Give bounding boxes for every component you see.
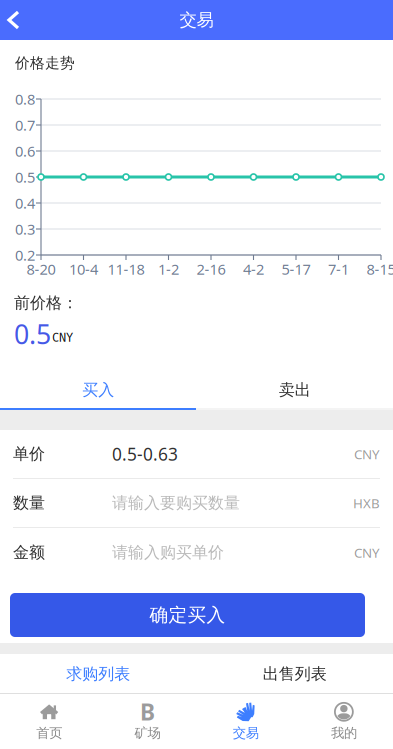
button[interactable]: 确定买入 [10,593,365,637]
staticText: 8-20 [26,259,55,279]
button[interactable]: 交易 [196,694,295,749]
staticText: 求购列表 [66,664,130,684]
staticText: 0.7 [15,115,35,135]
staticText: HXB [353,494,380,512]
staticText: B [140,696,155,727]
staticText: 0.5 [15,167,35,187]
staticText: 前价格： [14,293,78,313]
staticText: 单价 [13,444,45,464]
button[interactable]: 买入 [0,372,196,408]
button[interactable]: Back [0,0,28,39]
staticText: 0.4 [15,193,35,213]
staticText: 0.8 [15,89,35,109]
staticText: 0.6 [15,141,35,161]
button[interactable]: 出售列表 [196,654,393,694]
button[interactable]: 卖出 [196,372,393,408]
staticText: 0.5 [14,316,51,352]
staticText: 交易 [233,725,259,741]
staticText: 矿场 [134,725,160,741]
staticText: 10-4 [69,259,98,279]
staticText: 8-15 [366,259,393,279]
staticText: 0.3 [15,219,35,239]
button[interactable]: 首页 [0,694,98,749]
button[interactable]: 单价 [0,430,393,479]
staticText: 买入 [82,380,114,400]
staticText: CNY [354,445,380,463]
staticText: 首页 [36,725,62,741]
staticText: 7-1 [328,259,349,279]
staticText: 4-2 [243,259,264,279]
staticText: 请输入要购买数量 [112,493,240,513]
staticText: 5-17 [281,259,310,279]
staticText: 确定买入 [149,603,225,626]
staticText: 出售列表 [263,664,327,684]
staticText: 我的 [331,725,357,741]
staticText: 卖出 [279,380,311,400]
staticText: 2-16 [196,259,225,279]
staticText: 交易 [179,9,213,31]
button[interactable]: 求购列表 [0,654,196,694]
button[interactable]: 金额 [0,528,393,577]
staticText: 0.5-0.63 [112,442,178,465]
staticText: 价格走势 [15,54,75,72]
button[interactable]: B [98,694,196,749]
button[interactable]: 我的 [295,694,393,749]
staticText: 请输入购买单价 [112,543,224,562]
staticText: CNY [52,331,73,344]
staticText: 0.2 [15,245,35,265]
staticText: 11-18 [107,259,144,279]
staticText: 1-2 [158,259,179,279]
staticText: CNY [354,544,380,561]
staticText: 金额 [13,543,45,562]
button[interactable]: 数量 [0,479,393,528]
staticText: 数量 [13,493,45,513]
